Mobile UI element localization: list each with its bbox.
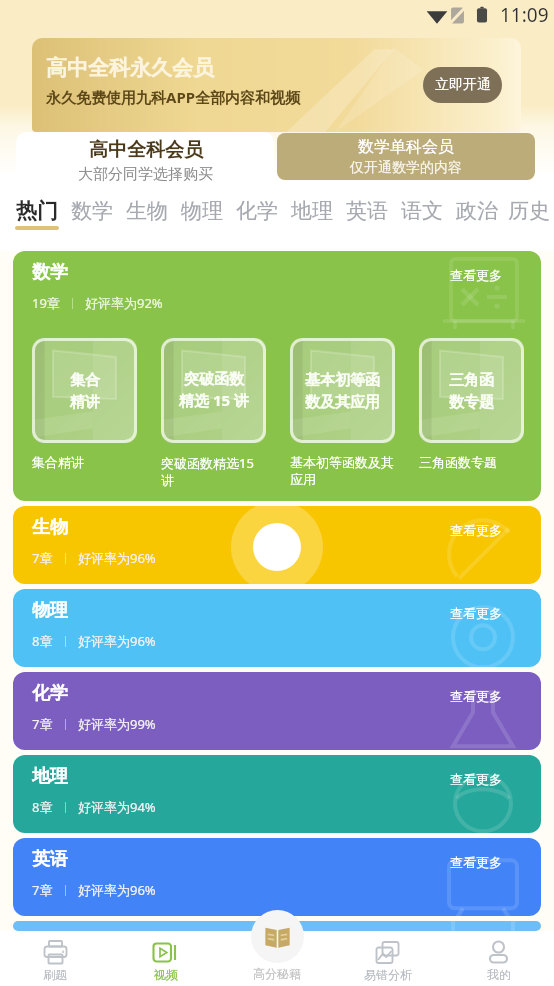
button[interactable]: 突破函数 精选 15 讲 <box>161 338 266 443</box>
button[interactable]: 基本初等函 数及其应用 <box>290 338 395 443</box>
button[interactable]: 高中全科永久会员 <box>32 38 521 132</box>
button[interactable]: 查看更多 <box>450 267 502 283</box>
staticText: 7章 <box>32 715 53 733</box>
staticText: 查看更多 <box>450 522 502 538</box>
button[interactable]: 我的 <box>443 931 554 986</box>
staticText: 生物 <box>32 516 68 539</box>
staticText: 英语 <box>32 848 68 871</box>
button[interactable]: 视频 <box>110 931 221 986</box>
staticText: 化学 <box>236 198 278 224</box>
other: 刷题 <box>43 940 68 965</box>
staticText: 好评率为99% <box>78 715 156 733</box>
staticText: 集合精讲 <box>32 454 84 470</box>
staticText: 7章 <box>32 881 53 899</box>
button[interactable]: 化学 <box>13 672 541 750</box>
button[interactable]: 生物 <box>13 506 541 584</box>
staticText: 物理 <box>181 198 223 224</box>
button[interactable]: 地理 <box>13 755 541 833</box>
button[interactable]: 热门 <box>9 190 64 251</box>
staticText: 基本初等函数及其应用 <box>290 454 395 488</box>
staticText: 立即开通 <box>435 76 491 94</box>
button[interactable]: 化学 <box>229 190 284 251</box>
staticText: 地理 <box>291 198 333 224</box>
button[interactable]: 查看更多 <box>450 771 502 787</box>
button[interactable]: 高中全科会员 <box>16 132 274 190</box>
staticText: 查看更多 <box>450 688 502 704</box>
button[interactable]: 查看更多 <box>450 688 502 704</box>
button[interactable]: 刷题 <box>0 931 110 986</box>
staticText: 突破函数精选15讲 <box>161 454 266 489</box>
staticText: 物理 <box>32 599 68 622</box>
staticText: 三角函数专题 <box>419 454 497 470</box>
staticText: 基本初等函 数及其应用 <box>305 371 380 411</box>
staticText: 仅开通数学的内容 <box>350 159 462 177</box>
staticText: 好评率为96% <box>78 549 156 567</box>
staticText: 查看更多 <box>450 267 502 283</box>
button[interactable]: 高分秘籍 <box>222 910 332 986</box>
other: 我的 <box>486 940 511 965</box>
button[interactable]: 英语 <box>339 190 394 251</box>
other: 高分秘籍 <box>264 923 291 950</box>
staticText: 查看更多 <box>450 605 502 621</box>
staticText: 刷题 <box>43 967 67 982</box>
button[interactable]: 数学单科会员 <box>277 133 535 180</box>
staticText: 好评率为94% <box>78 798 156 816</box>
staticText: 8章 <box>32 632 53 650</box>
staticText: 查看更多 <box>450 771 502 787</box>
staticText: 数学 <box>32 261 68 284</box>
button[interactable]: 政治 <box>449 190 504 251</box>
staticText: 易错分析 <box>364 967 412 982</box>
staticText: 地理 <box>32 765 68 788</box>
button[interactable]: 三角函 数专题 <box>419 338 524 443</box>
button[interactable]: 数学 <box>64 190 119 251</box>
staticText: 生物 <box>126 198 168 224</box>
staticText: 好评率为96% <box>78 881 156 899</box>
staticText: 数学单科会员 <box>358 137 454 157</box>
button[interactable]: 物理 <box>174 190 229 251</box>
staticText: 历史 <box>508 198 550 224</box>
staticText: 好评率为92% <box>85 294 163 312</box>
staticText: 语文 <box>401 198 443 224</box>
button[interactable]: 英语 <box>13 838 541 916</box>
staticText: 集合 精讲 <box>70 371 100 411</box>
staticText: 高分秘籍 <box>253 966 301 981</box>
staticText: 高中全科会员 <box>89 138 203 162</box>
staticText: 政治 <box>456 198 498 224</box>
staticText: 好评率为96% <box>78 632 156 650</box>
button[interactable]: 历史 <box>504 190 554 251</box>
staticText: 热门 <box>16 198 58 224</box>
button[interactable]: 数学 <box>13 251 541 501</box>
staticText: 大部分同学选择购买 <box>78 165 213 184</box>
staticText: 19章 <box>32 294 60 312</box>
staticText: 化学 <box>32 682 68 705</box>
button[interactable]: 立即开通 <box>423 67 502 103</box>
other: 易错分析 <box>375 940 400 965</box>
staticText: 11:09 <box>500 2 549 28</box>
other: 视频 <box>153 940 178 965</box>
button[interactable]: 查看更多 <box>450 854 502 870</box>
staticText: 我的 <box>487 967 511 982</box>
staticText: 8章 <box>32 798 53 816</box>
button[interactable]: 易错分析 <box>332 931 443 986</box>
button[interactable]: 语文 <box>394 190 449 251</box>
staticText: 7章 <box>32 549 53 567</box>
button[interactable]: 生物 <box>119 190 174 251</box>
button[interactable]: 查看更多 <box>450 522 502 538</box>
staticText: 突破函数 精选 15 讲 <box>179 370 249 411</box>
button[interactable]: 物理 <box>13 589 541 667</box>
staticText: 英语 <box>346 198 388 224</box>
button[interactable]: 查看更多 <box>450 605 502 621</box>
staticText: 数学 <box>71 198 113 224</box>
staticText: 视频 <box>154 967 178 982</box>
button[interactable]: 语文 <box>13 921 541 931</box>
staticText: 三角函 数专题 <box>449 371 494 411</box>
staticText: 高中全科永久会员 <box>46 55 214 81</box>
staticText: 查看更多 <box>450 854 502 870</box>
button[interactable]: 地理 <box>284 190 339 251</box>
button[interactable]: 集合 精讲 <box>32 338 137 443</box>
staticText: 永久免费使用九科APP全部内容和视频 <box>46 87 301 107</box>
